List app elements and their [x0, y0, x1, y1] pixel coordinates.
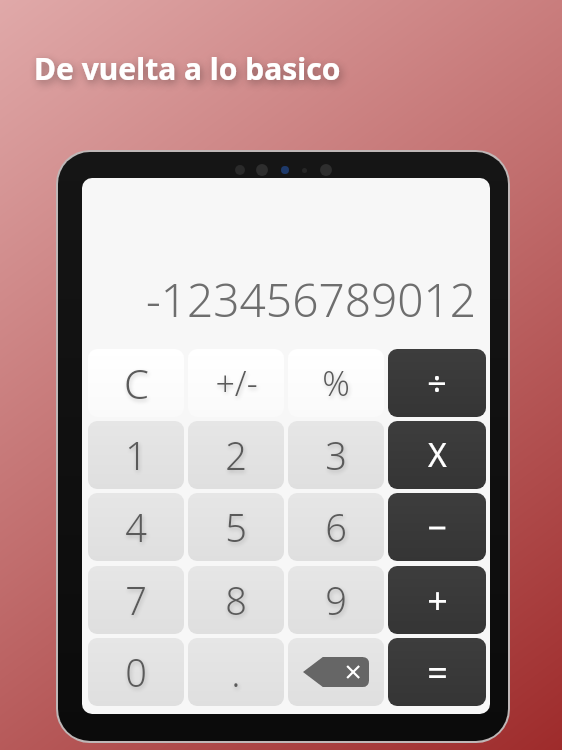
staticText: 3: [325, 429, 347, 481]
button[interactable]: 4: [88, 493, 184, 561]
button[interactable]: 2: [188, 421, 284, 489]
button[interactable]: X: [388, 421, 486, 489]
button[interactable]: C: [88, 349, 184, 417]
staticText: +: [427, 576, 448, 625]
button[interactable]: =: [388, 638, 486, 706]
staticText: 0: [125, 646, 147, 698]
button[interactable]: +: [388, 566, 486, 634]
staticText: 9: [325, 574, 347, 626]
button[interactable]: 3: [288, 421, 384, 489]
staticText: =: [427, 648, 448, 697]
staticText: ÷: [427, 360, 447, 406]
button[interactable]: 5: [188, 493, 284, 561]
button[interactable]: Backspace: [288, 638, 384, 706]
staticText: -123456789012: [145, 268, 476, 324]
staticText: .: [231, 646, 241, 698]
staticText: 2: [225, 429, 247, 481]
button[interactable]: +/-: [188, 349, 284, 417]
staticText: 7: [125, 574, 147, 626]
staticText: 6: [325, 501, 347, 553]
button[interactable]: .: [188, 638, 284, 706]
button[interactable]: ÷: [388, 349, 486, 417]
button[interactable]: 8: [188, 566, 284, 634]
staticText: 4: [125, 501, 147, 553]
staticText: %: [322, 360, 350, 406]
staticText: C: [124, 356, 149, 410]
staticText: −: [427, 504, 447, 550]
button[interactable]: 0: [88, 638, 184, 706]
staticText: De vuelta a lo basico: [34, 48, 341, 89]
staticText: +/-: [215, 360, 258, 406]
staticText: X: [428, 433, 447, 477]
staticText: 8: [225, 574, 247, 626]
button[interactable]: −: [388, 493, 486, 561]
staticText: 1: [125, 429, 147, 481]
staticText: 5: [225, 501, 247, 553]
button[interactable]: 9: [288, 566, 384, 634]
button[interactable]: %: [288, 349, 384, 417]
button[interactable]: 6: [288, 493, 384, 561]
button[interactable]: 7: [88, 566, 184, 634]
button[interactable]: 1: [88, 421, 184, 489]
